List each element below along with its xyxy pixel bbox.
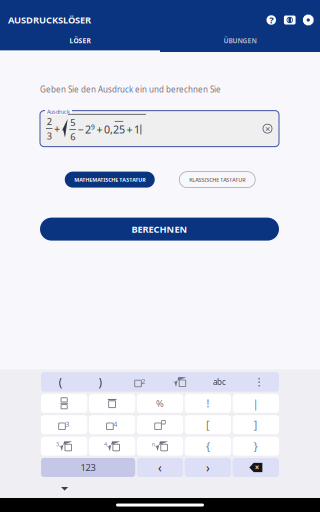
staticText: [ — [206, 418, 210, 432]
staticText: 9 — [91, 122, 95, 131]
staticText: ] — [254, 418, 258, 432]
button[interactable]: ÜBUNGEN — [160, 31, 320, 52]
staticText: Ausdruck — [47, 108, 70, 115]
button[interactable]: Square root — [160, 372, 200, 391]
staticText: 4 — [113, 420, 117, 429]
staticText: } — [254, 439, 258, 453]
staticText: abc — [213, 377, 226, 387]
button[interactable]: Settings — [299, 9, 317, 31]
staticText: 123 — [81, 461, 96, 474]
button[interactable]: Hide keyboard — [54, 482, 75, 496]
staticText: 5 — [70, 116, 75, 128]
staticText: 0, — [104, 122, 113, 137]
staticText: 6 — [70, 130, 75, 143]
button[interactable]: Fraction — [41, 394, 87, 413]
staticText: 4 — [104, 441, 107, 448]
staticText: Geben Sie den Ausdruck ein und berechnen… — [40, 84, 221, 95]
button[interactable]: ] — [233, 415, 279, 434]
staticText: 2 — [85, 122, 91, 137]
button[interactable]: } — [233, 437, 279, 456]
staticText: | — [253, 396, 259, 410]
staticText: LÖSER — [69, 36, 90, 45]
staticText: ‹ — [158, 459, 162, 475]
staticText: ( — [59, 374, 63, 390]
button[interactable]: [ — [185, 415, 231, 434]
button[interactable]: Move right — [185, 458, 231, 477]
staticText: › — [206, 459, 210, 475]
staticText: MATHEMATISCHE TASTATUR — [74, 176, 145, 183]
button[interactable]: Delete — [233, 458, 279, 477]
button[interactable]: BERECHNEN — [40, 218, 279, 241]
button[interactable]: | — [233, 394, 279, 413]
button[interactable]: Cubed — [41, 415, 87, 434]
button[interactable]: abc — [200, 372, 239, 391]
button[interactable]: MATHEMATISCHE TASTATUR — [65, 172, 155, 188]
button[interactable]: ) — [81, 372, 120, 391]
staticText: 3 — [47, 130, 52, 142]
button[interactable]: Cube root — [41, 437, 87, 456]
button[interactable]: Toggle contrast — [280, 9, 299, 31]
staticText: ÜBUNGEN — [223, 36, 256, 45]
staticText: AUSDRUCKSLÖSER — [8, 14, 91, 26]
button[interactable]: Move left — [137, 458, 183, 477]
staticText: ⋮ — [254, 376, 265, 388]
button[interactable]: % — [137, 394, 183, 413]
button[interactable]: Power — [137, 415, 183, 434]
button[interactable]: ! — [185, 394, 231, 413]
staticText: + — [126, 122, 132, 137]
staticText: 25 — [113, 122, 125, 136]
staticText: n — [152, 441, 155, 448]
staticText: 3 — [66, 420, 70, 429]
button[interactable]: Square — [120, 372, 160, 391]
staticText: 2 — [47, 115, 52, 128]
staticText: 1 — [134, 122, 140, 137]
button[interactable]: Fourth power — [89, 415, 135, 434]
button[interactable]: Fourth root — [89, 437, 135, 456]
button[interactable]: ( — [41, 372, 81, 391]
button[interactable]: Nth root — [137, 437, 183, 456]
staticText: × — [265, 122, 270, 135]
staticText: ) — [98, 374, 102, 390]
staticText: { — [206, 439, 210, 453]
staticText: 2 — [142, 377, 146, 386]
staticText: − — [77, 122, 83, 137]
staticText: × — [255, 462, 260, 473]
button[interactable]: ⋮ — [239, 372, 279, 391]
button[interactable]: { — [185, 437, 231, 456]
staticText: % — [156, 397, 164, 409]
staticText: + — [54, 121, 60, 136]
staticText: ! — [206, 396, 209, 410]
staticText: + — [96, 122, 102, 137]
button[interactable]: Repeating decimal — [89, 394, 135, 413]
staticText: BERECHNEN — [131, 223, 187, 235]
staticText: 3 — [56, 441, 59, 448]
staticText: KLASSISCHE TASTATUR — [189, 176, 245, 183]
button[interactable]: LÖSER — [0, 31, 160, 52]
staticText: ? — [269, 14, 273, 26]
button[interactable]: Help — [262, 9, 280, 31]
button[interactable]: KLASSISCHE TASTATUR — [179, 172, 255, 188]
button[interactable]: Numeric keyboard — [41, 458, 135, 477]
